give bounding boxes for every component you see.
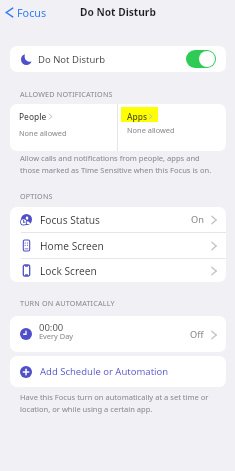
button[interactable]: Lock Screen (10, 259, 226, 282)
staticText: Do Not Disturb (80, 5, 156, 19)
staticText: Do Not Disturb (38, 53, 106, 66)
staticText: Focus (17, 5, 47, 20)
staticText: Have this Focus turn on automatically at… (20, 392, 216, 414)
staticText: Lock Screen (40, 264, 97, 278)
button[interactable]: Add Schedule or Automation (10, 356, 226, 387)
staticText: 00:00 (39, 321, 64, 334)
staticText: People (19, 111, 47, 122)
staticText: TURN ON AUTOMATICALLY (20, 298, 115, 308)
button[interactable]: Focus Status (10, 207, 226, 232)
staticText: On (191, 213, 204, 226)
staticText: Focus Status (40, 213, 101, 227)
staticText: None allowed (127, 125, 175, 135)
staticText: OPTIONS (20, 191, 53, 201)
staticText: Add Schedule or Automation (40, 365, 169, 378)
staticText: Home Screen (40, 239, 104, 253)
button[interactable]: Do Not Disturb (10, 46, 226, 72)
staticText: Off (190, 328, 204, 341)
button[interactable]: People (10, 104, 117, 151)
button[interactable]: Home Screen (10, 233, 226, 258)
button[interactable]: Focus (5, 5, 47, 20)
button[interactable]: Do Not Disturb toggle (186, 50, 216, 68)
staticText: None allowed (19, 128, 67, 138)
button[interactable]: Apps (118, 104, 226, 151)
staticText: Allow calls and notifications from peopl… (20, 153, 219, 175)
button[interactable]: 00:00 (10, 316, 226, 352)
staticText: Apps (127, 111, 147, 122)
staticText: ALLOWED NOTIFICATIONS (20, 89, 113, 99)
staticText: Every Day (39, 331, 74, 341)
